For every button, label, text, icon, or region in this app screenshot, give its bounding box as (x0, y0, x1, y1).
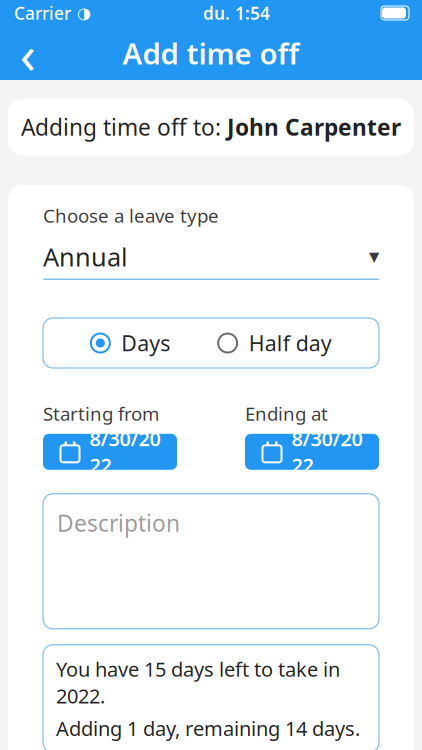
staticText: Days (121, 329, 170, 357)
button[interactable]: Back (6, 31, 50, 75)
staticText: du. 1:54 (203, 1, 270, 24)
staticText: ▼ (369, 249, 379, 264)
button[interactable]: Half day (218, 329, 332, 357)
staticText: Add time off (122, 33, 299, 72)
staticText: 8/30/2022 (89, 425, 160, 478)
button[interactable]: 8/30/2022 (245, 434, 379, 470)
button[interactable]: Description (43, 494, 379, 629)
staticText: Ending at (245, 401, 328, 426)
staticText: Starting from (43, 401, 159, 426)
staticText: Choose a leave type (43, 203, 219, 228)
button[interactable]: Annual (43, 240, 379, 280)
staticText: John Carpenter (227, 112, 401, 142)
staticText: Carrier (14, 1, 71, 24)
staticText: Adding time off to: (21, 112, 227, 142)
staticText: You have 15 days left to take in 2022. (56, 656, 340, 709)
staticText: ◑ (77, 4, 91, 22)
staticText: 8/30/2022 (291, 425, 362, 478)
staticText: Half day (249, 329, 332, 357)
staticText: Adding 1 day, remaining 14 days. (56, 715, 360, 741)
staticText: Annual (43, 240, 128, 273)
staticText: Description (57, 508, 180, 538)
button[interactable]: Days (90, 329, 170, 357)
button[interactable]: 8/30/2022 (43, 434, 177, 470)
staticText: ‹ (19, 18, 36, 88)
